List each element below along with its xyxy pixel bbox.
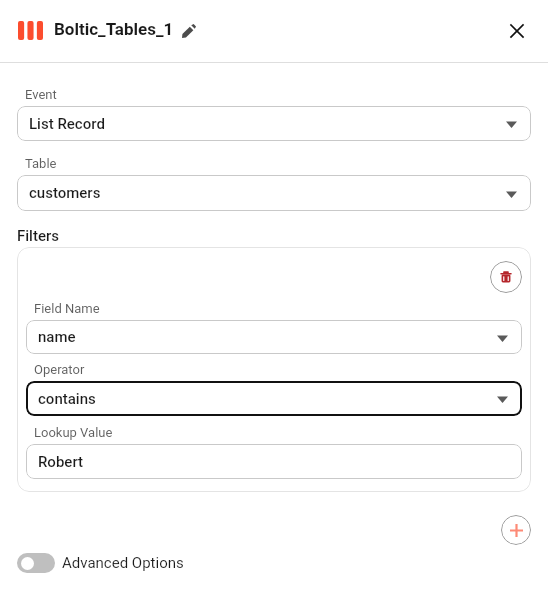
button[interactable]: Close xyxy=(501,16,533,48)
button[interactable]: Table dropdown xyxy=(17,175,531,211)
staticText: name xyxy=(38,328,76,346)
staticText: Field Name xyxy=(34,301,100,316)
staticText: Operator xyxy=(34,362,85,377)
button[interactable]: Add filter xyxy=(501,515,531,545)
staticText: Filters xyxy=(17,227,59,245)
button[interactable]: Advanced Options xyxy=(17,553,184,573)
staticText: Robert xyxy=(38,453,84,471)
button[interactable]: Edit name xyxy=(177,17,201,41)
button[interactable]: Delete filter xyxy=(490,261,522,293)
button[interactable]: Field Name dropdown xyxy=(26,320,522,354)
button[interactable]: Operator dropdown xyxy=(26,381,522,416)
staticText: Table xyxy=(25,156,57,171)
staticText: contains xyxy=(38,390,96,408)
staticText: customers xyxy=(29,184,101,202)
button[interactable]: Lookup Value xyxy=(26,444,522,479)
staticText: Lookup Value xyxy=(34,425,113,440)
staticText: Event xyxy=(25,87,57,102)
staticText: List Record xyxy=(29,115,105,133)
staticText: Boltic_Tables_1 xyxy=(54,19,174,39)
button[interactable]: Event dropdown xyxy=(17,106,531,141)
staticText: Advanced Options xyxy=(62,554,184,572)
